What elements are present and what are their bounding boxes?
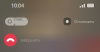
staticText: Завершить (20, 37, 40, 43)
staticText: 10:04 (11, 2, 24, 9)
button[interactable]: End call (4, 33, 17, 46)
staticText: Отключить (74, 19, 94, 24)
staticText: Поиск (13, 16, 23, 27)
button[interactable]: Отключить (63, 18, 94, 25)
button[interactable]: Поиск (5, 17, 28, 25)
